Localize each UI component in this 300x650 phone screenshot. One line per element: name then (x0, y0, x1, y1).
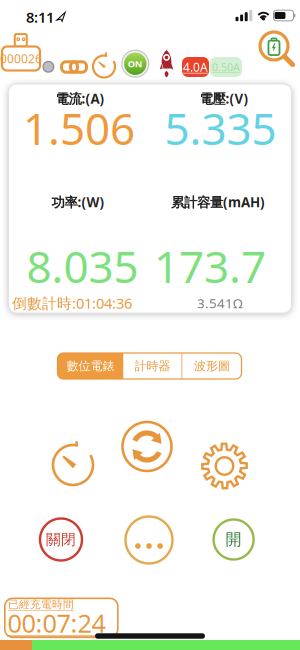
button[interactable]: Refresh (121, 420, 173, 472)
staticText: 電流:(A) (55, 90, 104, 107)
button[interactable]: Boost (159, 50, 173, 79)
staticText: 累計容量(mAH) (171, 193, 265, 211)
button[interactable]: Power ON (121, 50, 149, 78)
staticText: 開 (226, 530, 242, 549)
button[interactable]: 關閉 (40, 518, 82, 560)
button[interactable]: 開 (214, 519, 254, 559)
button[interactable]: 0.50A (210, 57, 242, 77)
staticText: 電壓:(V) (199, 90, 248, 107)
staticText: 數位電錶 (66, 359, 114, 373)
button[interactable]: Settings (200, 442, 248, 490)
staticText: 8.035 (26, 237, 138, 295)
staticText: 關閉 (46, 530, 76, 548)
staticText: 000026 (0, 50, 42, 66)
button[interactable]: Link (61, 59, 87, 74)
staticText: 0.50A (212, 60, 240, 74)
button[interactable]: 計時器 (123, 353, 181, 379)
staticText: 倒數計時:01:04:36 (12, 293, 132, 313)
staticText: 功率:(W) (51, 193, 104, 211)
staticText: 8:11 (26, 7, 54, 27)
button[interactable]: Find device (259, 31, 297, 69)
staticText: 5.335 (164, 99, 276, 157)
button[interactable]: Countdown timer (50, 441, 96, 489)
staticText: ON (128, 57, 143, 70)
button[interactable]: 數位電錶 (57, 353, 123, 379)
staticText: 4.0A (183, 59, 208, 75)
staticText: 計時器 (134, 359, 170, 373)
button[interactable]: 波形圖 (182, 353, 241, 379)
button[interactable]: 4.0A (182, 57, 209, 77)
staticText: 波形圖 (194, 359, 230, 373)
staticText: 173.7 (154, 237, 266, 295)
button[interactable]: More (125, 516, 172, 563)
button[interactable]: Device 000026 (0, 32, 42, 74)
staticText: 3.541Ω (197, 294, 243, 312)
staticText: 已經充電時間 (8, 598, 74, 611)
staticText: 1.506 (23, 99, 135, 157)
button[interactable]: Timer (91, 52, 117, 79)
staticText: 00:07:24 (7, 606, 105, 640)
